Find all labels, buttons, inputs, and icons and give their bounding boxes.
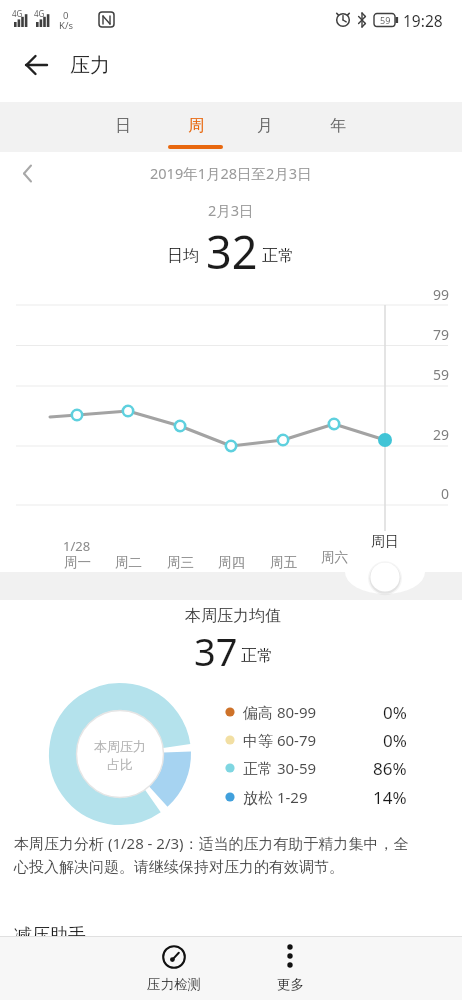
button[interactable]: [95, 100, 151, 152]
staticText: 59: [433, 365, 450, 384]
staticText: 本周压力: [94, 738, 146, 754]
staticText: 放松 1-29: [243, 787, 308, 807]
staticText: 99: [433, 285, 450, 304]
staticText: 年: [330, 116, 346, 136]
button[interactable]: [110, 936, 238, 1000]
staticText: 周三: [167, 554, 194, 571]
staticText: 19:28: [403, 10, 443, 31]
staticText: 0%: [383, 701, 407, 724]
staticText: 周: [188, 116, 204, 136]
staticText: 29: [433, 425, 450, 444]
staticText: 59: [380, 14, 391, 26]
staticText: 周四: [218, 554, 245, 571]
staticText: 心投入解决问题。请继续保持对压力的有效调节。: [14, 858, 344, 877]
staticText: 2019年1月28日至2月3日: [150, 163, 312, 183]
staticText: 中等 60-79: [243, 730, 317, 750]
staticText: 1/28: [63, 537, 91, 555]
staticText: 79: [433, 325, 450, 344]
staticText: 4G: [12, 8, 23, 19]
staticText: 本周压力分析 (1/28 - 2/3)：适当的压力有助于精力集中，全: [14, 833, 409, 853]
button[interactable]: [226, 936, 354, 1000]
staticText: 占比: [107, 756, 133, 772]
staticText: 本周压力均值: [185, 606, 281, 626]
staticText: 周六: [321, 549, 348, 566]
staticText: 0%: [383, 729, 407, 752]
staticText: 86%: [373, 757, 407, 780]
button[interactable]: [8, 152, 48, 194]
staticText: K/s: [59, 19, 73, 32]
staticText: 压力: [70, 53, 110, 78]
staticText: 减压助手: [14, 924, 86, 947]
staticText: 压力检测: [147, 976, 201, 993]
staticText: 周一: [64, 554, 91, 571]
staticText: 4G: [34, 8, 45, 19]
staticText: 0: [441, 484, 450, 503]
staticText: 更多: [277, 976, 304, 993]
staticText: 正常: [241, 646, 273, 666]
staticText: 32: [206, 221, 258, 281]
staticText: 周五: [270, 554, 297, 571]
staticText: 0: [63, 9, 69, 22]
button[interactable]: [14, 45, 58, 85]
staticText: 2月3日: [208, 200, 254, 220]
staticText: 正常: [262, 246, 294, 266]
staticText: 正常 30-59: [243, 758, 317, 778]
staticText: 37: [194, 625, 238, 677]
staticText: 日: [115, 116, 131, 136]
staticText: 14%: [373, 786, 407, 809]
button[interactable]: [363, 555, 407, 599]
staticText: 月: [257, 116, 273, 136]
staticText: 偏高 80-99: [243, 702, 317, 722]
button[interactable]: [168, 100, 224, 152]
button[interactable]: [310, 100, 366, 152]
staticText: 周二: [115, 554, 142, 571]
button[interactable]: [237, 100, 293, 152]
staticText: 周日: [371, 533, 399, 551]
staticText: 日均: [167, 246, 199, 266]
